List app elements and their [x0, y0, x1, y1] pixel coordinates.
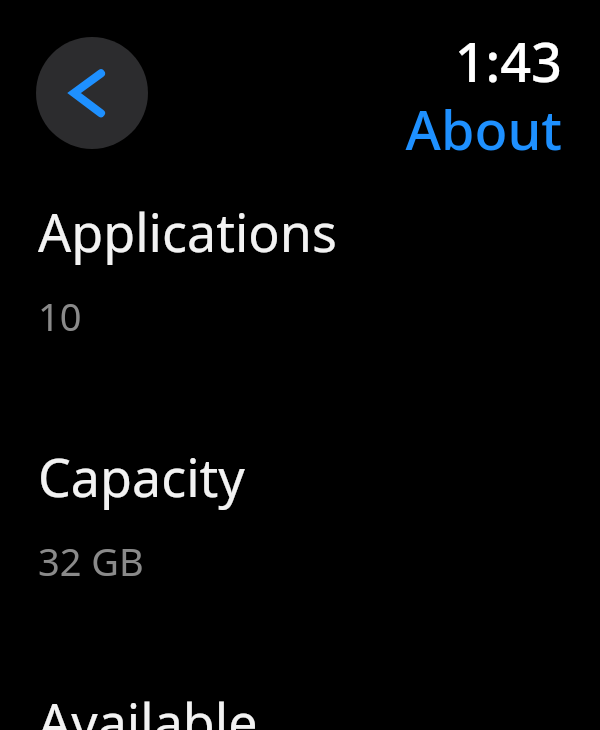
staticText: Available	[38, 686, 258, 730]
button[interactable]: Back	[36, 37, 148, 149]
staticText: About	[405, 92, 562, 154]
button[interactable]: About	[342, 92, 562, 154]
button[interactable]: Capacity	[0, 441, 600, 591]
staticText: 10	[38, 290, 82, 342]
button[interactable]: Applications	[0, 196, 600, 346]
staticText: Capacity	[38, 441, 245, 512]
staticText: 32 GB	[38, 535, 144, 587]
button[interactable]: Available	[0, 686, 600, 730]
staticText: 1:43	[454, 24, 562, 86]
staticText: Applications	[38, 196, 337, 267]
